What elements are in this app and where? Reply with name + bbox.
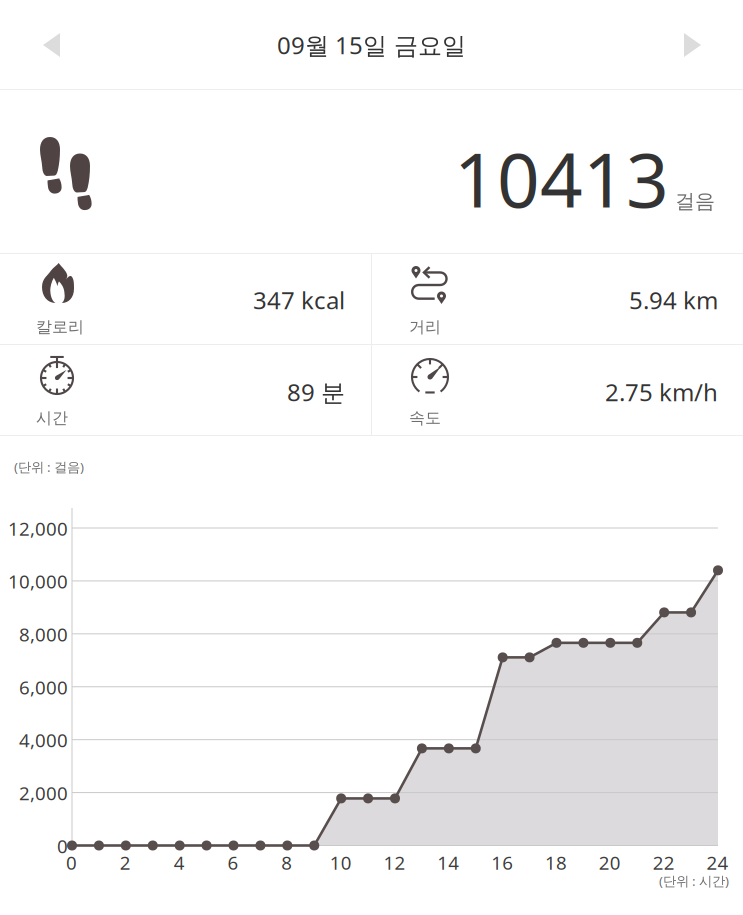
staticText: 18 bbox=[545, 850, 567, 875]
staticText: 89 분 bbox=[287, 376, 345, 408]
button[interactable]: Previous day bbox=[31, 21, 72, 69]
staticText: 14 bbox=[437, 850, 459, 875]
staticText: 10 bbox=[330, 850, 352, 875]
staticText: 10,000 bbox=[8, 569, 68, 594]
staticText: 4,000 bbox=[19, 728, 68, 752]
staticText: 6 bbox=[227, 850, 238, 875]
staticText: 22 bbox=[653, 850, 675, 875]
staticText: 12,000 bbox=[8, 516, 68, 541]
staticText: 16 bbox=[491, 850, 513, 875]
button[interactable]: Next day bbox=[672, 21, 713, 69]
staticText: 0 bbox=[57, 833, 68, 858]
staticText: 20 bbox=[599, 850, 621, 875]
staticText: 칼로리 bbox=[36, 317, 84, 337]
staticText: 2,000 bbox=[19, 781, 68, 805]
staticText: 2 bbox=[120, 850, 131, 875]
staticText: 0 bbox=[66, 850, 77, 875]
staticText: (단위 : 걸음) bbox=[14, 458, 84, 476]
staticText: 8,000 bbox=[19, 622, 68, 647]
staticText: 속도 bbox=[409, 408, 441, 428]
staticText: 12 bbox=[383, 850, 405, 875]
staticText: 24 bbox=[706, 850, 728, 875]
staticText: 6,000 bbox=[19, 675, 68, 700]
staticText: 시간 bbox=[36, 408, 68, 428]
staticText: 10413 bbox=[454, 129, 669, 228]
staticText: 거리 bbox=[409, 317, 441, 337]
staticText: 347 kcal bbox=[253, 284, 345, 316]
staticText: 09월 15일 금요일 bbox=[277, 29, 466, 61]
staticText: 5.94 km bbox=[629, 284, 718, 316]
staticText: 4 bbox=[174, 850, 185, 875]
staticText: 걸음 bbox=[675, 189, 715, 214]
staticText: 8 bbox=[281, 850, 292, 875]
staticText: 2.75 km/h bbox=[605, 376, 718, 408]
staticText: (단위 : 시간) bbox=[659, 872, 729, 890]
